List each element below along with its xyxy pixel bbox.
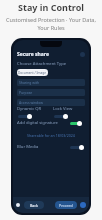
- staticText: Proceed: [59, 203, 73, 208]
- button[interactable]: Toggle: [69, 120, 85, 126]
- staticText: Stay in Control: [18, 1, 84, 13]
- staticText: Back: [30, 203, 38, 208]
- staticText: Access window: [19, 100, 43, 105]
- staticText: Customised Protection · Your Data, Your …: [6, 16, 96, 32]
- staticText: Secure share: [17, 51, 49, 58]
- staticText: Choose Attachment Type: [17, 61, 67, 67]
- staticText: Purpose: [19, 90, 33, 95]
- staticText: Dynamic QR: [17, 106, 42, 112]
- button[interactable]: Purpose: [17, 89, 85, 96]
- button[interactable]: Toggle: [69, 144, 85, 150]
- button[interactable]: Menu: [16, 203, 20, 207]
- button[interactable]: Toggle: [17, 113, 33, 119]
- button[interactable]: Back: [24, 201, 44, 209]
- button[interactable]: Document / Image: [17, 69, 48, 76]
- staticText: Add digital signature: [17, 120, 58, 126]
- button[interactable]: Access window: [17, 99, 85, 106]
- staticText: Lock View: [53, 106, 73, 112]
- button[interactable]: Close: [80, 52, 85, 57]
- button[interactable]: Proceed: [55, 201, 77, 209]
- button[interactable]: Toggle: [53, 113, 69, 119]
- staticText: Document / Image: [18, 71, 47, 75]
- staticText: Shareable for an 18/03/2024: [27, 133, 75, 138]
- staticText: Blur Media: [17, 144, 39, 150]
- button[interactable]: Sharing with: [17, 79, 85, 86]
- button[interactable]: More: [80, 202, 86, 208]
- staticText: Sharing with: [19, 80, 40, 85]
